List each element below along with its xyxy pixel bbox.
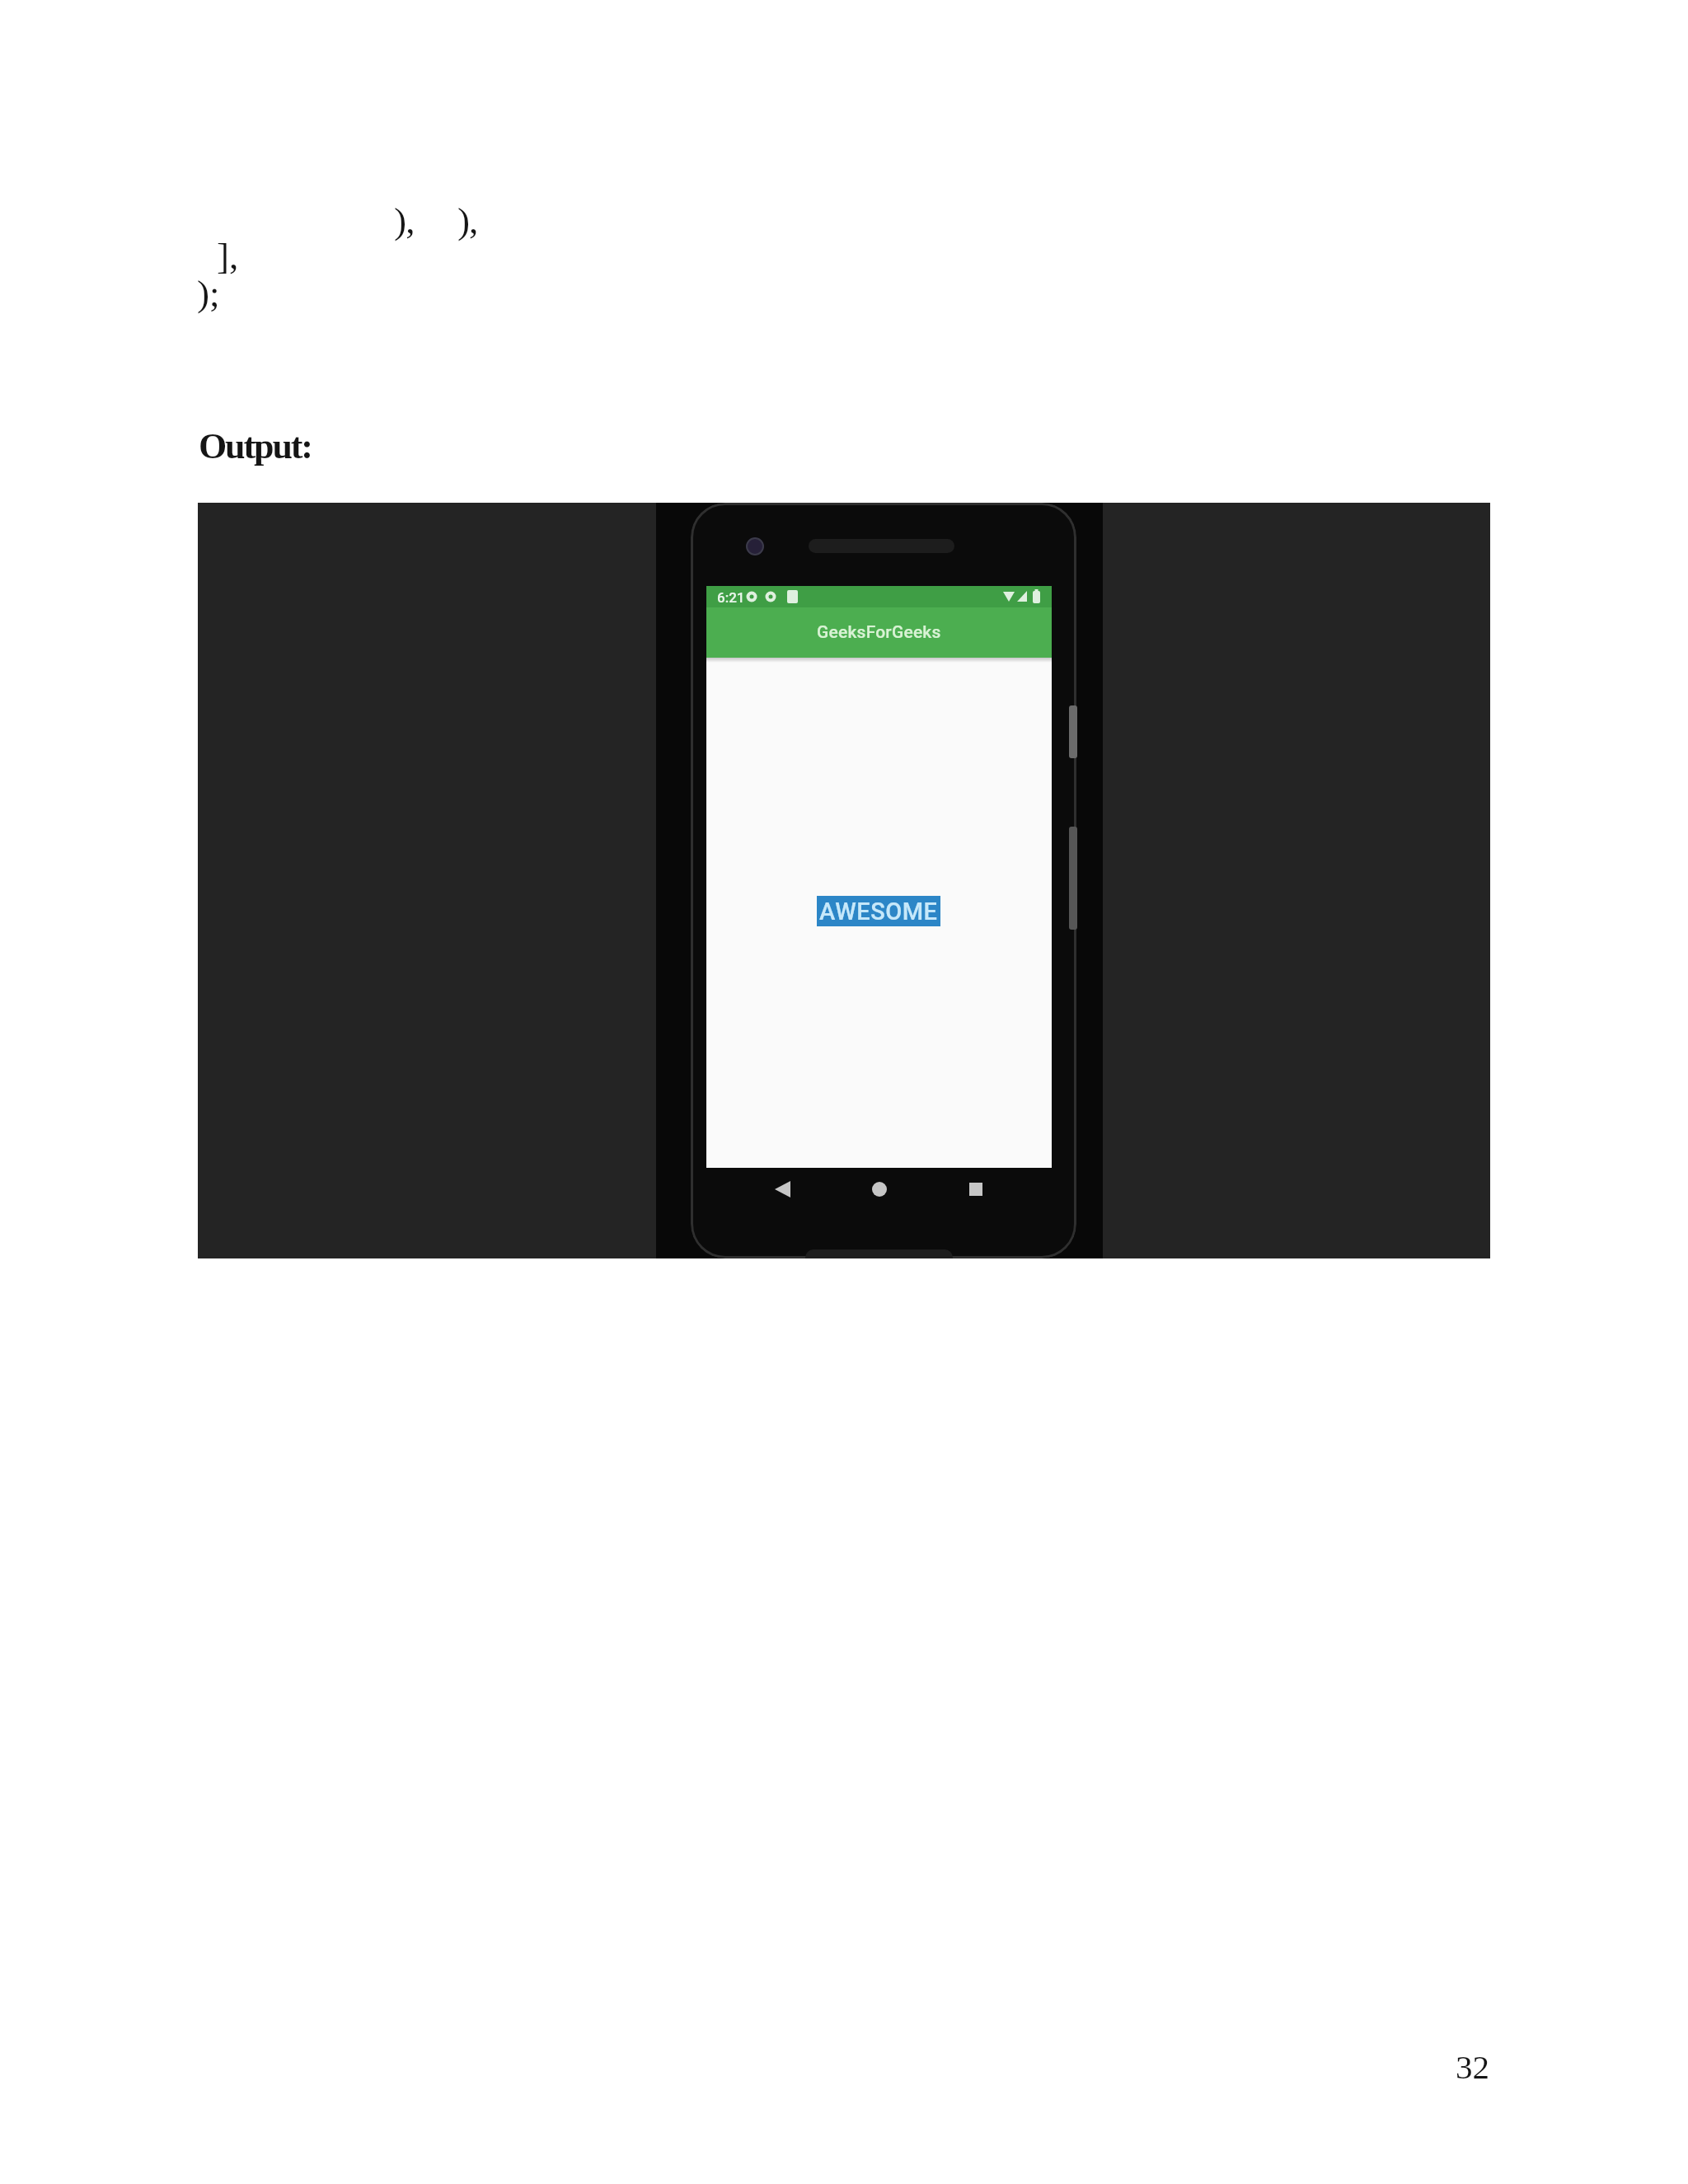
staticText: ], xyxy=(217,236,239,277)
staticText: Output: xyxy=(199,426,312,466)
staticText: ), ), xyxy=(394,200,478,241)
staticText: GeeksForGeeks xyxy=(817,622,941,643)
button[interactable] xyxy=(867,1177,892,1202)
staticText: ); xyxy=(197,273,220,314)
staticText: 6:21 xyxy=(717,589,745,606)
button[interactable]: AWESOME xyxy=(817,896,940,926)
button[interactable]: GeeksForGeeks xyxy=(706,607,1052,658)
button[interactable] xyxy=(964,1177,988,1202)
button[interactable] xyxy=(771,1177,795,1202)
staticText: 32 xyxy=(1456,2048,1489,2085)
staticText: AWESOME xyxy=(819,898,938,926)
